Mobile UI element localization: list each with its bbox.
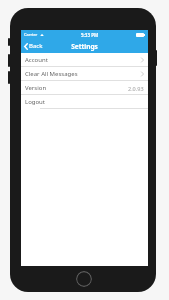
- button[interactable]: Version: [21, 81, 148, 95]
- button[interactable]: Home: [76, 271, 92, 287]
- staticText: Settings: [71, 42, 98, 51]
- staticText: Back: [29, 42, 43, 50]
- staticText: Account: [25, 56, 48, 64]
- button[interactable]: Account: [21, 53, 148, 67]
- button[interactable]: Clear All Messages: [21, 67, 148, 81]
- staticText: Version: [25, 84, 47, 92]
- button[interactable]: Logout: [21, 95, 148, 109]
- staticText: Carrier: [24, 32, 38, 37]
- staticText: Clear All Messages: [25, 70, 78, 78]
- button[interactable]: Back: [21, 40, 47, 52]
- staticText: Logout: [25, 98, 45, 106]
- staticText: 2.0.93: [128, 85, 144, 92]
- staticText: 5:33 PM: [81, 32, 99, 38]
